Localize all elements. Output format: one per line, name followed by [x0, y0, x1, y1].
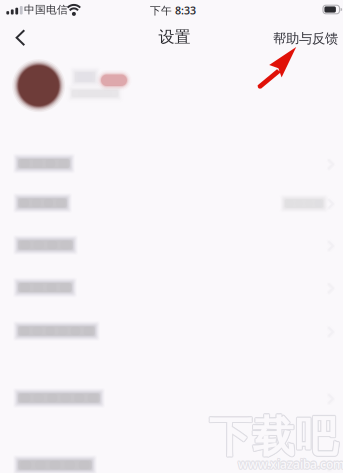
- staticText: 下载吧: [209, 410, 338, 462]
- button[interactable]: 帮助与反馈: [266, 21, 338, 55]
- staticText: 下载吧: [209, 412, 338, 464]
- button[interactable]: [0, 225, 343, 267]
- button[interactable]: [0, 445, 343, 473]
- staticText: 中国电信: [24, 3, 68, 16]
- staticText: 下载吧: [208, 410, 337, 462]
- staticText: www.xiazaiba.com: [239, 456, 343, 472]
- staticText: www.xiazaiba.com: [239, 457, 343, 473]
- button[interactable]: [0, 267, 343, 309]
- staticText: 下载吧: [208, 412, 337, 464]
- staticText: 下载吧: [210, 410, 339, 462]
- staticText: 设置: [158, 27, 190, 47]
- button[interactable]: [0, 311, 343, 353]
- button[interactable]: [0, 143, 343, 185]
- button[interactable]: [0, 183, 343, 225]
- button[interactable]: [0, 54, 343, 116]
- button[interactable]: Back: [0, 21, 56, 55]
- staticText: www.xiazaiba.com: [239, 455, 343, 471]
- staticText: www.xiazaiba.com: [238, 457, 343, 473]
- staticText: www.xiazaiba.com: [237, 455, 343, 471]
- staticText: 下午 8:33: [150, 3, 196, 17]
- staticText: 帮助与反馈: [273, 30, 338, 47]
- staticText: 下载吧: [210, 412, 339, 464]
- staticText: 下载吧: [208, 411, 337, 463]
- staticText: 下载吧: [210, 411, 339, 463]
- staticText: www.xiazaiba.com: [238, 456, 343, 472]
- staticText: www.xiazaiba.com: [237, 457, 343, 473]
- button[interactable]: [0, 378, 343, 420]
- staticText: www.xiazaiba.com: [237, 456, 343, 472]
- staticText: www.xiazaiba.com: [238, 455, 343, 471]
- staticText: 下载吧: [209, 411, 338, 463]
